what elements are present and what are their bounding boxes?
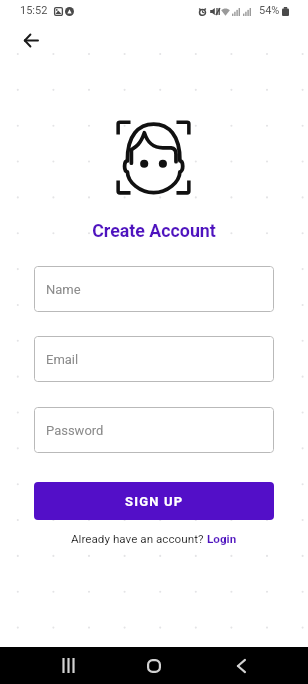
- button[interactable]: Password: [34, 407, 274, 453]
- button[interactable]: Home: [136, 647, 172, 684]
- button[interactable]: Back: [13, 22, 49, 58]
- staticText: SIGN UP: [125, 494, 184, 509]
- button[interactable]: Name: [34, 266, 274, 312]
- staticText: 15:52: [20, 4, 48, 17]
- staticText: 54%: [259, 4, 280, 17]
- button[interactable]: Already have an account?: [71, 532, 237, 546]
- button[interactable]: Back: [223, 647, 259, 684]
- staticText: Already have an account?: [71, 532, 207, 546]
- staticText: Password: [46, 423, 104, 438]
- button[interactable]: SIGN UP: [34, 482, 274, 520]
- button[interactable]: Recent apps: [50, 647, 86, 684]
- staticText: Create Account: [0, 220, 308, 241]
- button[interactable]: Email: [34, 336, 274, 382]
- staticText: Email: [46, 352, 79, 367]
- staticText: Name: [46, 282, 81, 297]
- staticText: Login: [207, 532, 237, 546]
